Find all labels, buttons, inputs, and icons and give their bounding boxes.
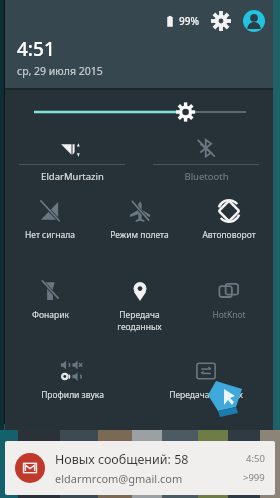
- staticText: 99%: [179, 14, 199, 28]
- button[interactable]: Передача данных: [139, 359, 273, 411]
- staticText: Профили звука: [41, 389, 104, 401]
- staticText: >999: [243, 471, 265, 484]
- staticText: Режим полета: [110, 229, 169, 241]
- other: Battery: [164, 15, 176, 27]
- button[interactable]: Режим полета: [95, 199, 184, 269]
- button[interactable]: Нет сигнала: [5, 199, 95, 269]
- button[interactable]: EldarMurtazin: [5, 134, 139, 189]
- button[interactable]: Settings: [211, 11, 231, 31]
- staticText: Новых сообщений: 58: [55, 451, 189, 468]
- staticText: Автоповорот: [202, 229, 256, 241]
- button[interactable]: HotKnot: [184, 279, 273, 349]
- staticText: 4:51: [17, 36, 55, 62]
- staticText: Bluetooth: [184, 170, 229, 183]
- staticText: EldarMurtazin: [41, 170, 104, 183]
- staticText: Фонарик: [32, 309, 69, 321]
- button[interactable]: Автоповорот: [184, 199, 273, 269]
- button[interactable]: User: [243, 10, 265, 32]
- staticText: Передача данных: [169, 389, 243, 401]
- staticText: ср, 29 июля 2015: [17, 64, 103, 78]
- button[interactable]: Фонарик: [5, 279, 95, 349]
- button[interactable]: Передача геоданных: [95, 279, 184, 349]
- button[interactable]: Новых сообщений: 58: [5, 441, 275, 495]
- staticText: eldarmrcom@gmail.com: [55, 471, 183, 486]
- button[interactable]: Профили звука: [5, 359, 139, 411]
- staticText: 4:50: [246, 452, 265, 465]
- staticText: Нет сигнала: [25, 229, 75, 241]
- staticText: Передача геоданных: [97, 309, 182, 333]
- button[interactable]: Brightness: [5, 90, 273, 134]
- staticText: HotKnot: [212, 309, 246, 321]
- button[interactable]: Bluetooth: [139, 134, 273, 189]
